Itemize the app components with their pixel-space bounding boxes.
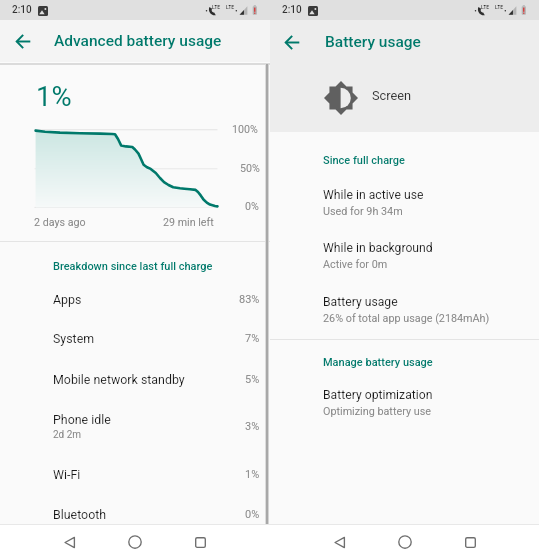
staticText: Breakdown since last full charge (53, 260, 213, 273)
staticText: 1% (36, 80, 72, 112)
staticText: Phone idle (53, 412, 111, 427)
staticText: 2:10 (282, 4, 302, 16)
staticText: Active for 0m (323, 258, 388, 271)
staticText: 29 min left (163, 216, 214, 229)
staticText: Apps (53, 292, 82, 307)
button[interactable]: Phone idle (0, 403, 270, 450)
staticText: 100% (232, 123, 258, 136)
staticText: LTE (212, 4, 221, 10)
staticText: Used for 9h 34m (323, 205, 403, 218)
staticText: Battery usage (325, 33, 421, 51)
button[interactable]: While in active use (270, 186, 539, 222)
staticText: System (53, 331, 95, 346)
button[interactable]: Navigate up (13, 31, 34, 52)
staticText: LTE (481, 4, 490, 10)
staticText: 2d 2m (53, 429, 82, 441)
button[interactable]: Home (118, 525, 152, 559)
staticText: 7% (245, 332, 260, 345)
staticText: While in background (323, 241, 433, 255)
staticText: Advanced battery usage (54, 32, 222, 50)
staticText: 50% (240, 162, 260, 175)
staticText: Manage battery usage (323, 356, 433, 369)
button[interactable]: System (0, 319, 270, 358)
button[interactable]: Recent apps (183, 525, 217, 559)
button[interactable]: Battery optimization (270, 386, 539, 422)
button[interactable]: Home (388, 525, 422, 559)
staticText: Battery usage (323, 295, 398, 309)
staticText: Bluetooth (53, 507, 107, 522)
staticText: 3% (245, 420, 260, 433)
staticText: LTE (495, 4, 504, 10)
staticText: Battery optimization (323, 388, 433, 402)
button[interactable]: While in background (270, 239, 539, 275)
staticText: Screen (372, 88, 412, 103)
staticText: Wi-Fi (53, 467, 81, 482)
button[interactable]: Back (323, 525, 357, 559)
button[interactable]: Mobile network standby (0, 359, 270, 399)
staticText: Optimizing battery use (323, 405, 431, 418)
staticText: 5% (245, 373, 260, 386)
staticText: 0% (245, 508, 260, 521)
staticText: While in active use (323, 188, 424, 202)
staticText: LTE (226, 4, 235, 10)
button[interactable]: Back (53, 525, 87, 559)
staticText: Mobile network standby (53, 372, 185, 387)
staticText: 2:10 (12, 4, 32, 16)
button[interactable]: Battery usage (270, 293, 539, 329)
staticText: 1% (245, 468, 260, 481)
staticText: Since full charge (323, 154, 405, 167)
staticText: 83% (239, 293, 260, 306)
staticText: 26% of total app usage (2184mAh) (323, 312, 490, 325)
button[interactable]: Recent apps (453, 525, 487, 559)
button[interactable]: Apps (0, 280, 270, 319)
staticText: 2 days ago (34, 216, 86, 229)
staticText: 0% (245, 200, 259, 213)
button[interactable]: Bluetooth (0, 495, 270, 534)
button[interactable]: Wi-Fi (0, 455, 270, 494)
button[interactable]: Navigate up (281, 31, 303, 53)
